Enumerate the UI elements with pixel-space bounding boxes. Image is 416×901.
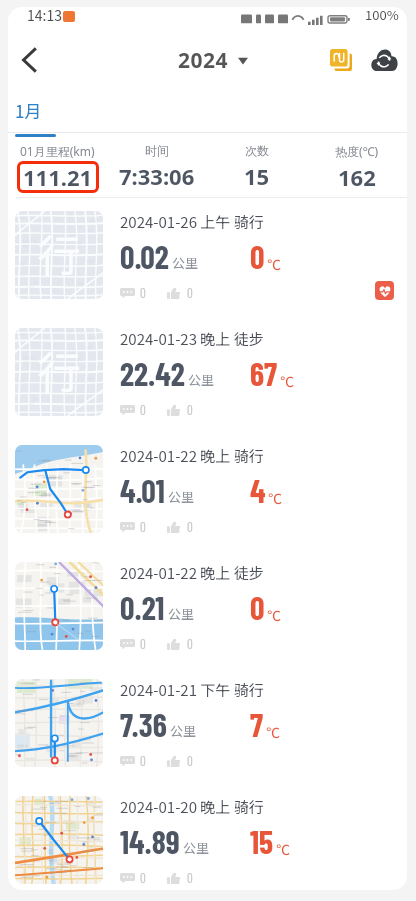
- staticText: 行: [37, 221, 81, 285]
- staticText: ℃: [276, 839, 290, 859]
- button[interactable]: Comments: [120, 517, 146, 537]
- button[interactable]: Comments: [120, 868, 146, 888]
- staticText: ℃: [268, 488, 282, 508]
- button[interactable]: Likes: [167, 868, 193, 888]
- staticText: 22.42: [120, 354, 185, 392]
- staticText: 7:33:06: [119, 161, 195, 191]
- staticText: 0: [140, 519, 146, 535]
- staticText: 公里: [183, 838, 210, 857]
- button[interactable]: 2024-01-20 晚上 骑行: [8, 783, 407, 890]
- staticText: 15: [250, 822, 274, 860]
- staticText: 公里: [172, 253, 199, 272]
- staticText: 0: [140, 285, 146, 301]
- staticText: 4: [250, 471, 266, 509]
- staticText: 0: [187, 870, 193, 886]
- button[interactable]: 行: [8, 315, 407, 432]
- staticText: 100%: [365, 7, 399, 24]
- staticText: 公里: [168, 487, 195, 506]
- button[interactable]: Comments: [120, 751, 146, 771]
- staticText: ℃: [280, 371, 294, 391]
- staticText: 2024-01-22 晚上 徒步: [120, 562, 264, 584]
- button[interactable]: 1月: [9, 98, 62, 137]
- staticText: 2024-01-26 上午 骑行: [120, 211, 264, 233]
- staticText: 14.89: [120, 822, 180, 860]
- staticText: 2024-01-20 晚上 骑行: [120, 796, 264, 818]
- staticText: 0: [250, 588, 265, 626]
- staticText: 7.36: [120, 705, 167, 743]
- button[interactable]: Comments: [120, 634, 146, 654]
- staticText: 时间: [145, 143, 169, 158]
- staticText: 0: [250, 237, 265, 275]
- staticText: 热度(℃): [335, 143, 379, 159]
- staticText: 111.21: [23, 162, 93, 192]
- button[interactable]: 2024-01-22 晚上 骑行: [8, 432, 407, 549]
- staticText: 67: [250, 354, 278, 392]
- button[interactable]: Back: [9, 40, 49, 80]
- button[interactable]: Heart rate: [375, 281, 394, 300]
- button[interactable]: Likes: [167, 283, 193, 303]
- staticText: 2024-01-21 下午 骑行: [120, 679, 264, 701]
- staticText: 公里: [168, 604, 195, 623]
- staticText: ℃: [267, 605, 281, 625]
- button[interactable]: Likes: [167, 634, 193, 654]
- staticText: 14:13: [27, 7, 62, 25]
- button[interactable]: Likes: [167, 400, 193, 420]
- staticText: 0.02: [120, 237, 169, 275]
- staticText: 0: [140, 402, 146, 418]
- staticText: 行: [37, 338, 81, 402]
- staticText: 公里: [188, 370, 215, 389]
- staticText: 01月里程(km): [20, 143, 95, 159]
- staticText: 15: [244, 161, 270, 191]
- button[interactable]: Comments: [120, 283, 146, 303]
- staticText: 次数: [245, 143, 269, 158]
- staticText: 162: [338, 162, 376, 192]
- button[interactable]: 2024-01-21 下午 骑行: [8, 666, 407, 783]
- staticText: 0: [187, 519, 193, 535]
- staticText: 0.21: [120, 588, 165, 626]
- button[interactable]: Comments: [120, 400, 146, 420]
- staticText: 2024-01-23 晚上 徒步: [120, 328, 264, 350]
- staticText: 0: [187, 285, 193, 301]
- button[interactable]: 行: [8, 198, 407, 315]
- button[interactable]: Likes: [167, 517, 193, 537]
- staticText: 0: [140, 636, 146, 652]
- button[interactable]: Notes: [323, 42, 359, 78]
- button[interactable]: 2024-01-22 晚上 徒步: [8, 549, 407, 666]
- button[interactable]: 2024: [178, 46, 248, 75]
- staticText: 0: [187, 402, 193, 418]
- staticText: 2024: [178, 46, 229, 75]
- staticText: 0: [187, 636, 193, 652]
- staticText: ℃: [266, 722, 280, 742]
- staticText: 1月: [15, 98, 42, 123]
- button[interactable]: Sync: [366, 42, 402, 78]
- staticText: ℃: [267, 254, 281, 274]
- staticText: 4.01: [120, 471, 165, 509]
- staticText: 公里: [170, 721, 197, 740]
- staticText: 7: [250, 705, 264, 743]
- staticText: 0: [187, 753, 193, 769]
- staticText: 2024-01-22 晚上 骑行: [120, 445, 264, 467]
- staticText: 0: [140, 753, 146, 769]
- button[interactable]: Likes: [167, 751, 193, 771]
- staticText: 0: [140, 870, 146, 886]
